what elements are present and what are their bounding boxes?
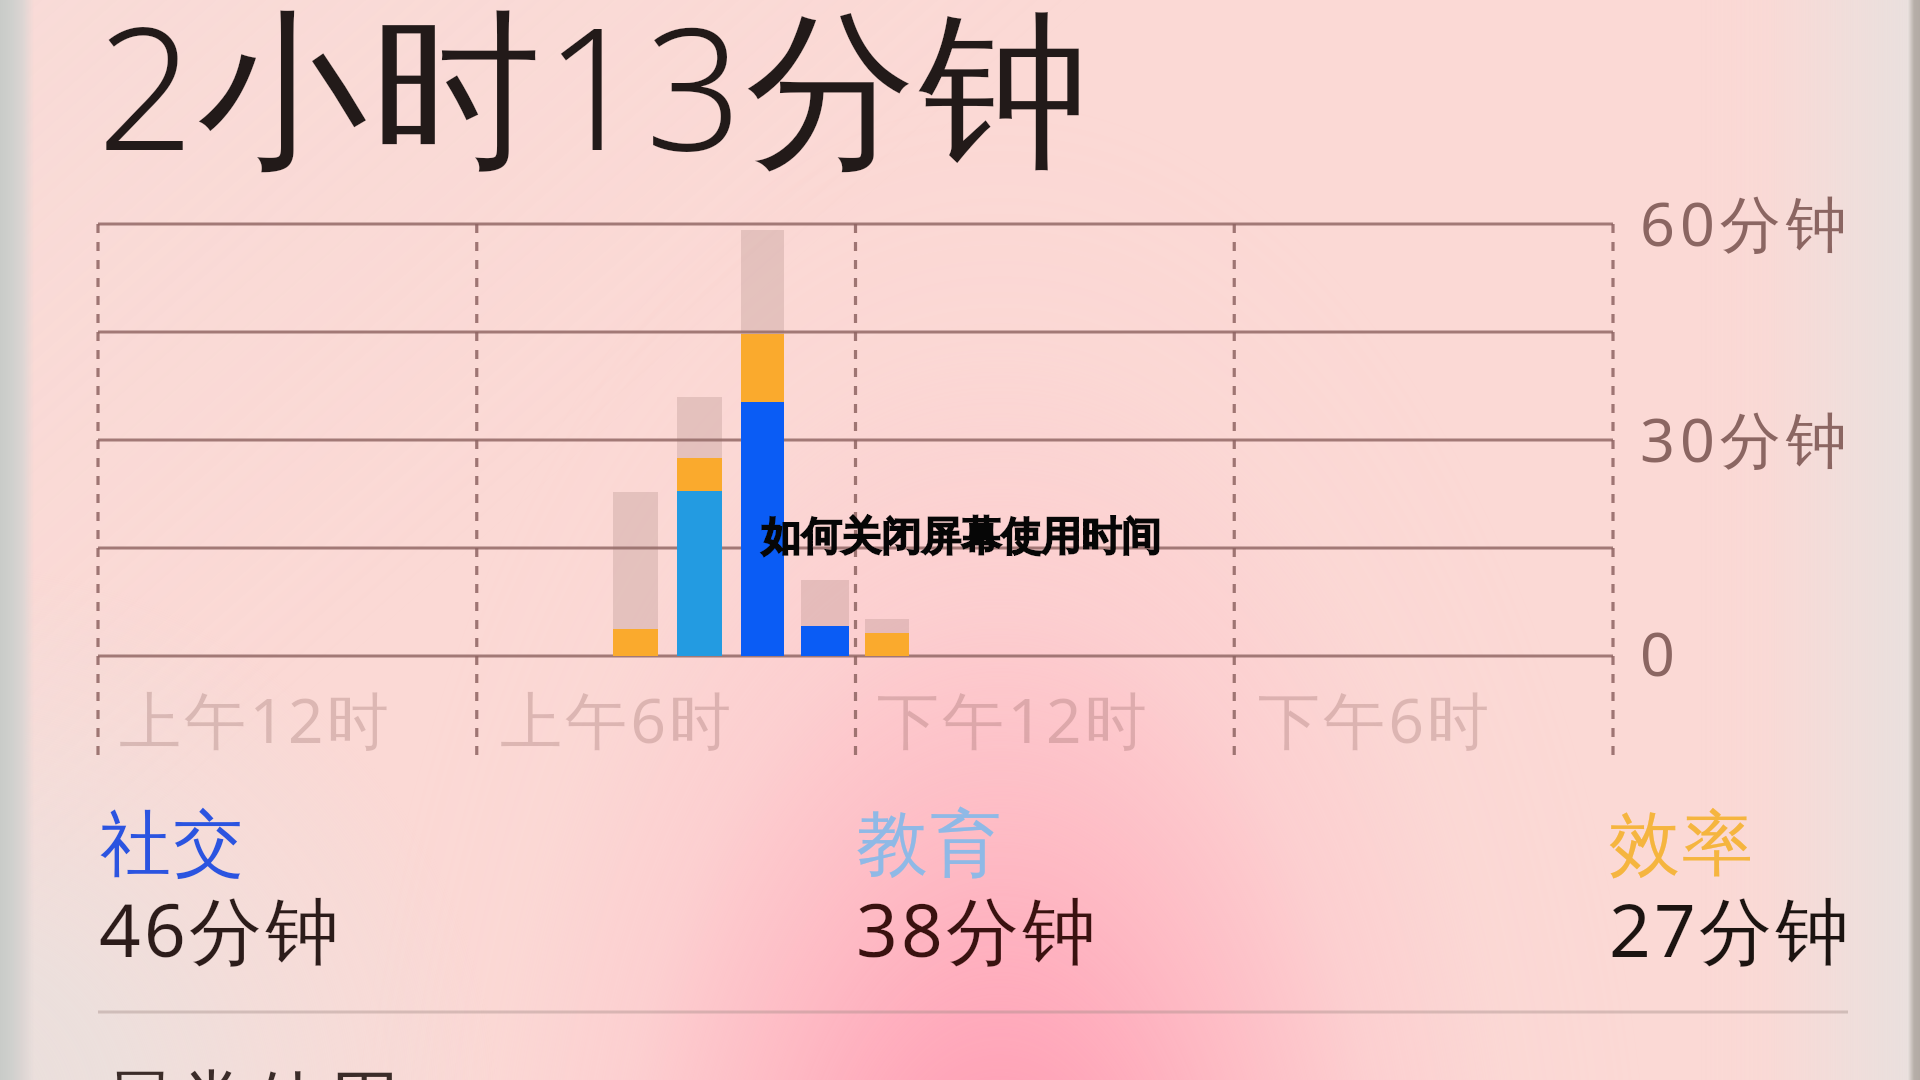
staticText: 效率 bbox=[1608, 800, 1754, 889]
button[interactable] bbox=[856, 790, 1186, 975]
staticText: 上午6时 bbox=[500, 677, 735, 762]
button[interactable] bbox=[1613, 790, 1893, 975]
staticText: 46分钟 bbox=[99, 879, 342, 979]
staticText: 社交 bbox=[99, 800, 245, 889]
staticText: 上午12时 bbox=[119, 677, 392, 762]
staticText: 38分钟 bbox=[856, 879, 1099, 979]
staticText: 教育 bbox=[856, 800, 1002, 889]
staticText: 27分钟 bbox=[1609, 879, 1852, 979]
staticText: 0 bbox=[1640, 611, 1680, 694]
staticText: 60分钟 bbox=[1640, 181, 1852, 264]
staticText: 下午12时 bbox=[877, 677, 1150, 762]
staticText: 30分钟 bbox=[1640, 397, 1852, 480]
staticText: 最常使用 bbox=[104, 1059, 400, 1080]
staticText: 2小时13分钟 bbox=[97, 0, 1093, 200]
staticText: 下午6时 bbox=[1258, 677, 1493, 762]
button[interactable] bbox=[99, 790, 429, 975]
staticText: 如何关闭屏幕使用时间 bbox=[761, 511, 1161, 561]
